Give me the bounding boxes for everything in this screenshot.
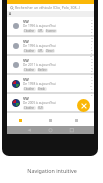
staticText: A — [9, 12, 12, 16]
staticText: De 1996 à aujourd'hui — [23, 44, 56, 48]
staticText: C — [91, 24, 93, 27]
staticText: M — [90, 54, 93, 57]
staticText: G — [91, 36, 93, 39]
button[interactable]: VW — [7, 94, 94, 111]
staticText: R — [91, 69, 93, 72]
staticText: Berline — [38, 68, 47, 72]
staticText: Citadine — [24, 106, 35, 110]
staticText: S — [91, 72, 93, 75]
staticText: De 1996 à aujourd'hui — [23, 24, 56, 28]
button[interactable]: VW — [7, 75, 94, 92]
staticText: I — [91, 42, 92, 45]
staticText: K — [91, 48, 93, 51]
staticText: D — [91, 27, 93, 30]
button[interactable]: Settings — [71, 115, 82, 126]
staticText: Navigation intuitive — [27, 167, 77, 174]
staticText: VW — [23, 39, 29, 44]
staticText: O — [91, 60, 93, 63]
staticText: VW — [23, 96, 29, 101]
staticText: V — [91, 81, 93, 84]
staticText: F — [91, 33, 93, 36]
staticText: Essence — [46, 29, 56, 33]
staticText: De 1998 à aujourd'hui — [23, 82, 56, 86]
button[interactable]: VW — [7, 37, 94, 54]
staticText: H — [91, 39, 93, 42]
staticText: SUV — [38, 106, 43, 110]
staticText: Z — [91, 93, 93, 96]
staticText: Y — [91, 90, 93, 93]
staticText: VW — [23, 58, 29, 63]
staticText: T — [91, 75, 93, 78]
staticText: J — [91, 45, 92, 48]
button[interactable]: Rechercher un véhicule (Clio, Polo, 308.… — [7, 4, 94, 11]
staticText: A — [91, 18, 93, 21]
staticText: P — [91, 63, 93, 66]
staticText: GPL — [38, 49, 43, 53]
staticText: W — [90, 84, 93, 87]
button[interactable]: VW — [7, 17, 94, 35]
staticText: E — [91, 30, 93, 33]
staticText: Diesel — [46, 49, 54, 53]
button[interactable]: Vehicles — [15, 115, 26, 126]
staticText: L — [91, 51, 93, 54]
staticText: N — [91, 57, 93, 60]
staticText: Break — [38, 87, 46, 91]
staticText: Citadine — [24, 29, 35, 33]
staticText: GPL — [38, 29, 43, 33]
button[interactable]: Compare — [45, 115, 56, 126]
staticText: X — [91, 87, 93, 90]
staticText: Q — [91, 66, 93, 69]
staticText: VW — [23, 19, 29, 24]
staticText: Citadine — [24, 87, 35, 91]
button[interactable]: VW — [7, 56, 94, 73]
staticText: U — [91, 78, 93, 81]
staticText: Rechercher un véhicule (Clio, Polo, 308.… — [15, 5, 81, 10]
staticText: De 2005 à aujourd'hui — [23, 101, 56, 105]
staticText: Citadine — [24, 49, 35, 53]
staticText: B — [91, 21, 93, 24]
staticText: De 2011 à aujourd'hui — [23, 63, 56, 67]
staticText: VW — [23, 77, 29, 82]
button[interactable]: Close — [77, 99, 90, 112]
staticText: Citadine — [24, 68, 35, 72]
